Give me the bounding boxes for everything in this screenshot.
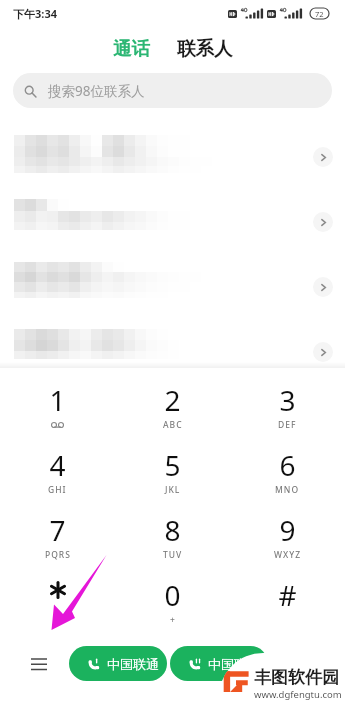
staticText: GHI — [48, 484, 67, 496]
button[interactable]: 通话 — [109, 37, 154, 60]
button[interactable]: 9 — [230, 511, 345, 576]
staticText: 搜索98位联系人 — [48, 82, 145, 100]
button[interactable]: 2 — [115, 381, 230, 446]
staticText: MNO — [275, 484, 300, 496]
staticText: JKL — [165, 484, 181, 496]
button[interactable]: 1 — [0, 381, 115, 446]
button[interactable]: 8 — [115, 511, 230, 576]
staticText: DEF — [278, 419, 297, 431]
button[interactable]: 5 — [115, 446, 230, 511]
button[interactable]: More options — [26, 651, 52, 677]
button[interactable]: Open contact — [0, 124, 345, 189]
button[interactable]: 0 — [115, 576, 230, 641]
staticText: + — [170, 614, 176, 626]
staticText: WXYZ — [274, 549, 302, 561]
button[interactable]: 7 — [0, 511, 115, 576]
button[interactable]: Open contact — [313, 342, 333, 362]
staticText: TUV — [163, 549, 183, 561]
staticText: 9 — [279, 511, 296, 549]
button[interactable]: 搜索98位联系人 — [13, 73, 332, 108]
staticText: 8 — [164, 511, 181, 549]
staticText: 72 — [315, 9, 324, 19]
staticText: 1 — [49, 381, 66, 419]
button[interactable] — [0, 576, 115, 641]
staticText: PQRS — [45, 549, 71, 561]
staticText: 下午3:34 — [13, 6, 57, 21]
staticText: 丰图软件园 — [254, 667, 339, 688]
button[interactable]: Open contact — [0, 319, 345, 384]
button[interactable]: Open contact — [0, 189, 345, 254]
staticText: # — [278, 576, 297, 614]
button[interactable]: 中国联通 — [69, 646, 167, 681]
staticText: 0 — [164, 576, 181, 614]
button[interactable]: # — [230, 576, 345, 641]
button[interactable]: Open contact — [313, 212, 333, 232]
staticText: 7 — [49, 511, 66, 549]
staticText: 中国联通 — [208, 656, 260, 672]
staticText: www.dgfengtu.com — [254, 688, 342, 701]
staticText: 6 — [279, 446, 296, 484]
staticText: 3 — [279, 381, 296, 419]
staticText: 中国联通 — [107, 656, 159, 672]
staticText: ABC — [163, 419, 183, 431]
staticText: 通话 — [113, 37, 150, 60]
button[interactable]: 联系人 — [173, 37, 237, 60]
staticText: 联系人 — [177, 37, 233, 60]
staticText: 4 — [49, 446, 66, 484]
button[interactable]: Open contact — [313, 147, 333, 167]
staticText: 5 — [164, 446, 181, 484]
button[interactable]: 4 — [0, 446, 115, 511]
staticText: 2 — [164, 381, 181, 419]
button[interactable]: 6 — [230, 446, 345, 511]
button[interactable]: 中国联通 — [170, 646, 268, 681]
button[interactable]: Open contact — [0, 254, 345, 319]
button[interactable]: Open contact — [313, 277, 333, 297]
button[interactable]: 3 — [230, 381, 345, 446]
